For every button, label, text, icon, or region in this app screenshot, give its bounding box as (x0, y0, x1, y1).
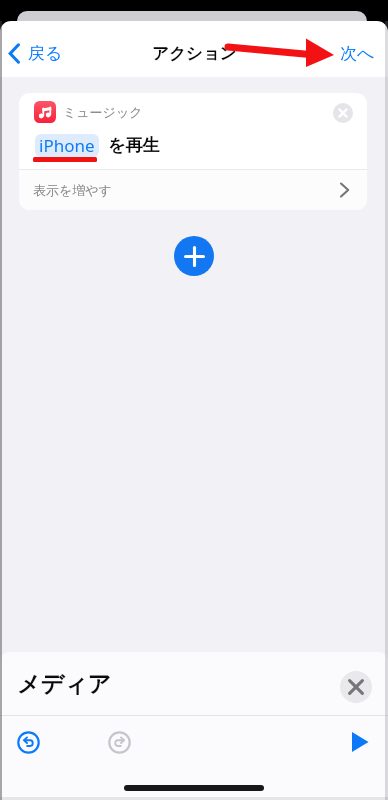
button[interactable] (333, 103, 353, 123)
button[interactable] (108, 731, 131, 754)
staticText: アクション (152, 43, 237, 64)
staticText: 表示を増やす (33, 182, 112, 198)
button[interactable]: 表示を増やす (19, 170, 367, 210)
button[interactable]: iPhone (35, 134, 99, 157)
button[interactable]: 戻る (4, 39, 63, 67)
staticText: メディア (17, 670, 112, 699)
staticText: を再生 (108, 135, 160, 156)
button[interactable] (174, 236, 214, 276)
button[interactable]: 次へ (330, 39, 384, 67)
staticText: ミュージック (63, 104, 143, 120)
staticText: 戻る (28, 43, 63, 64)
staticText: iPhone (39, 134, 95, 157)
button[interactable] (340, 671, 372, 703)
button[interactable] (17, 731, 40, 754)
button[interactable] (348, 729, 372, 755)
staticText: 次へ (340, 43, 375, 64)
